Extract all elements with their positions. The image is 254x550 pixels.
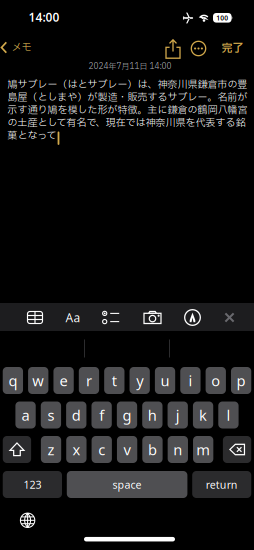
staticText: o: [211, 371, 220, 390]
staticText: t: [112, 371, 117, 390]
staticText: p: [237, 371, 246, 390]
button[interactable]: v: [117, 436, 137, 463]
staticText: c: [98, 440, 105, 459]
button[interactable]: z: [41, 436, 61, 463]
button[interactable]: t: [104, 367, 124, 394]
button[interactable]: [26, 310, 43, 324]
staticText: i: [188, 371, 192, 390]
button[interactable]: d: [66, 401, 86, 428]
button[interactable]: [102, 310, 120, 324]
staticText: a: [22, 405, 30, 425]
staticText: space: [113, 477, 142, 492]
staticText: g: [122, 405, 131, 425]
button[interactable]: g: [117, 401, 137, 428]
staticText: d: [72, 405, 81, 425]
staticText: f: [99, 405, 104, 425]
button[interactable]: [165, 39, 181, 59]
staticText: 完了: [221, 40, 243, 56]
button[interactable]: s: [41, 401, 61, 428]
button[interactable]: c: [92, 436, 112, 463]
staticText: h: [148, 405, 157, 425]
button[interactable]: b: [142, 436, 163, 463]
staticText: 鳩サブレー（はとサブレー）は、神奈川県鎌倉市の豊: [7, 77, 247, 92]
button[interactable]: [3, 436, 31, 463]
staticText: x: [72, 440, 80, 459]
button[interactable]: 完了: [221, 40, 243, 56]
button[interactable]: j: [168, 401, 188, 428]
staticText: 2024年7月11日 14:00: [88, 61, 171, 72]
staticText: return: [206, 477, 238, 492]
button[interactable]: return: [192, 471, 251, 498]
button[interactable]: a: [15, 401, 36, 428]
button[interactable]: [184, 309, 201, 326]
staticText: 123: [23, 477, 41, 492]
staticText: y: [136, 371, 143, 390]
staticText: j: [176, 405, 180, 425]
button[interactable]: l: [218, 401, 239, 428]
button[interactable]: r: [79, 367, 99, 394]
staticText: m: [196, 440, 210, 459]
staticText: l: [226, 405, 230, 425]
staticText: e: [60, 371, 68, 390]
button[interactable]: f: [91, 401, 112, 428]
staticText: n: [173, 440, 182, 459]
staticText: b: [148, 440, 157, 459]
staticText: 100: [216, 13, 228, 22]
button[interactable]: o: [206, 367, 226, 394]
staticText: k: [199, 405, 207, 425]
staticText: z: [47, 440, 54, 459]
button[interactable]: メモ: [0, 40, 31, 55]
button[interactable]: u: [155, 367, 175, 394]
staticText: v: [124, 440, 131, 459]
staticText: w: [32, 371, 44, 390]
staticText: r: [86, 371, 92, 390]
staticText: メモ: [11, 40, 31, 55]
staticText: 菓となって: [7, 128, 56, 143]
button[interactable]: i: [180, 367, 200, 394]
button[interactable]: [190, 40, 206, 56]
staticText: Aa: [65, 309, 80, 325]
button[interactable]: h: [142, 401, 162, 428]
button[interactable]: k: [193, 401, 213, 428]
button[interactable]: q: [3, 367, 23, 394]
button[interactable]: [20, 512, 36, 528]
button[interactable]: [223, 436, 251, 463]
button[interactable]: e: [53, 367, 74, 394]
staticText: 14:00: [28, 9, 59, 25]
button[interactable]: m: [193, 436, 213, 463]
staticText: u: [160, 371, 169, 390]
button[interactable]: 123: [3, 471, 62, 498]
button[interactable]: x: [66, 436, 86, 463]
staticText: q: [8, 371, 17, 390]
button[interactable]: w: [28, 367, 48, 394]
staticText: 島屋（としまや）が製造・販売するサブレー。名前が: [7, 90, 247, 105]
staticText: s: [47, 405, 54, 425]
button[interactable]: Aa: [65, 309, 80, 325]
staticText: の土産として有名で、現在では神奈川県を代表する銘: [7, 115, 245, 130]
button[interactable]: space: [67, 471, 187, 498]
button[interactable]: n: [168, 436, 188, 463]
staticText: 示す通り鳩を模した形が特徴。主に鎌倉の鶴岡八幡宮: [7, 103, 247, 118]
button[interactable]: y: [129, 367, 150, 394]
button[interactable]: [143, 310, 162, 324]
button[interactable]: [224, 312, 235, 323]
button[interactable]: p: [231, 367, 251, 394]
